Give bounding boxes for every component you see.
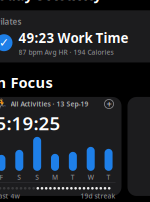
staticText: T [107,173,111,182]
staticText: All Activities · 13 Sep-19 [10,100,88,108]
staticText: 19d streak [80,192,115,200]
staticText: T [71,173,75,182]
staticText: 🏃 [0,99,7,109]
staticText: M [52,173,58,182]
staticText: 5:19:25 [0,110,60,135]
button[interactable]: Pilates [0,10,150,62]
staticText: Pilates [0,16,21,27]
staticText: ✓ [0,36,9,49]
staticText: W [88,173,94,182]
staticText: S [17,173,21,182]
staticText: In Focus [0,72,52,92]
staticText: S [35,173,39,182]
staticText: F [0,173,3,182]
staticText: 49:23 Work Time [18,29,128,47]
staticText: Last 4w [0,192,19,200]
button[interactable]: Add activity [103,98,114,109]
staticText: Today's Activity [0,0,101,4]
staticText: + [106,98,111,110]
staticText: 87 bpm Avg HR · 194 Calories [18,48,113,56]
